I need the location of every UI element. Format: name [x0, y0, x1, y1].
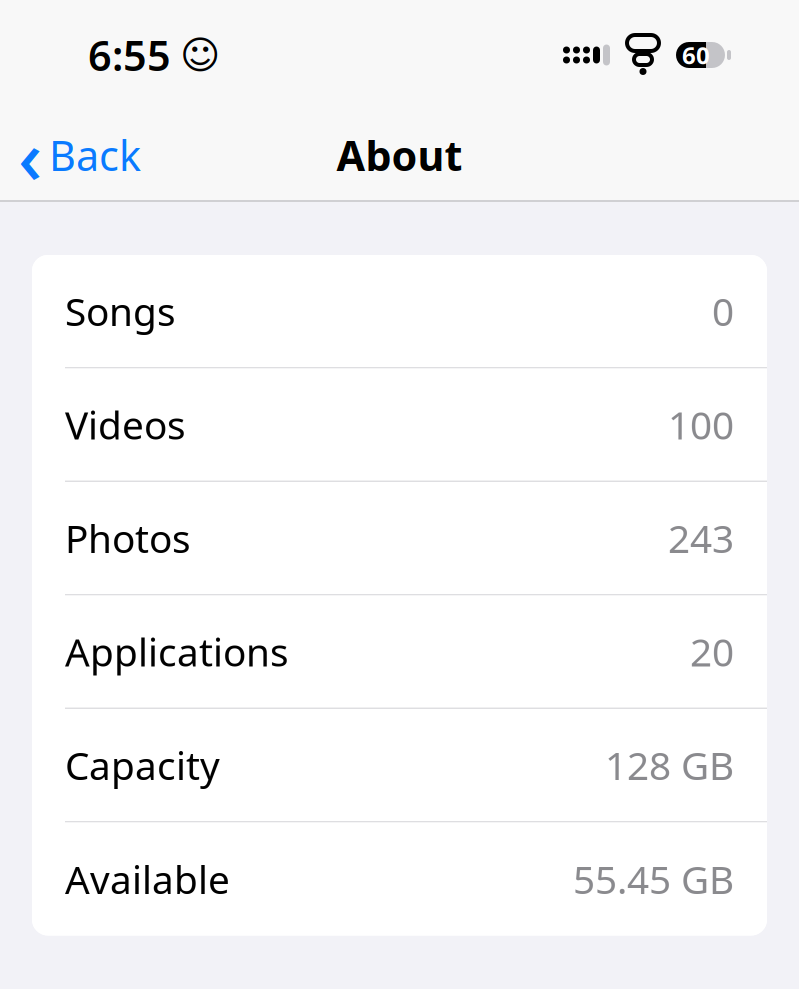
staticText: 55.45 GB [573, 853, 734, 905]
staticText: 243 [668, 512, 734, 564]
staticText: Back [49, 128, 141, 182]
staticText: Applications [65, 626, 289, 677]
button[interactable]: Photos [32, 482, 767, 595]
staticText: 60 [682, 39, 710, 71]
button[interactable]: Songs [32, 255, 767, 368]
staticText: ‹ [18, 105, 42, 205]
button[interactable]: Applications [32, 595, 767, 709]
staticText: 100 [668, 399, 734, 450]
staticText: Songs [65, 285, 176, 337]
staticText: 6:55 [88, 28, 171, 82]
button[interactable]: Videos [32, 368, 767, 482]
staticText: Available [65, 853, 230, 905]
button[interactable]: Capacity [32, 709, 767, 822]
button[interactable]: ‹ [0, 110, 157, 200]
staticText: About [336, 128, 462, 182]
staticText: 20 [690, 626, 734, 677]
staticText: Capacity [65, 739, 220, 791]
button[interactable]: Available [32, 822, 767, 935]
staticText: Videos [65, 399, 186, 450]
staticText: ☺ [180, 33, 220, 77]
staticText: 128 GB [605, 739, 734, 791]
staticText: Photos [65, 512, 191, 564]
staticText: 0 [712, 285, 734, 337]
